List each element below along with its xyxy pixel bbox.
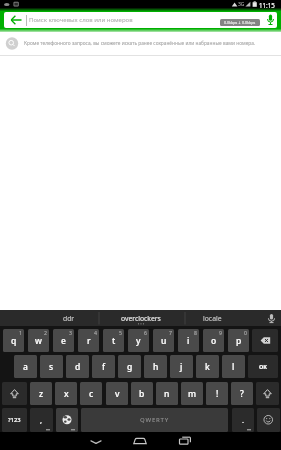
button[interactable]: k (196, 355, 219, 378)
staticText: . (242, 415, 245, 425)
button[interactable] (252, 329, 278, 352)
staticText: Кроме телефонного запроса, вы сможете ис… (24, 40, 256, 47)
button[interactable]: z (30, 382, 52, 405)
button[interactable]: u (153, 329, 174, 352)
button[interactable] (172, 432, 196, 450)
staticText: z (39, 388, 44, 400)
button[interactable]: r (78, 329, 99, 352)
button[interactable]: q (3, 329, 24, 352)
button[interactable]: h (144, 355, 167, 378)
staticText: 8 (194, 329, 197, 336)
staticText: k (205, 361, 210, 373)
staticText: l (232, 361, 235, 373)
staticText: d (75, 361, 81, 373)
staticText: g (127, 361, 133, 373)
staticText: 9 (219, 329, 222, 336)
staticText: ddr (63, 314, 75, 323)
staticText: OK (259, 363, 268, 370)
staticText: h (153, 361, 159, 373)
staticText: 11:15 (259, 1, 275, 9)
button[interactable] (84, 432, 108, 450)
staticText: o (211, 335, 217, 347)
button[interactable]: f (92, 355, 115, 378)
staticText: ? (240, 388, 244, 400)
staticText: Поиск ключевых слов или номеров (29, 16, 133, 24)
button[interactable]: o (203, 329, 224, 352)
button[interactable]: , (30, 408, 53, 432)
staticText: f (102, 361, 106, 373)
staticText: c (89, 388, 94, 400)
button[interactable]: m (181, 382, 203, 405)
button[interactable] (264, 12, 277, 28)
button[interactable]: j (170, 355, 193, 378)
button[interactable]: v (106, 382, 128, 405)
staticText: t (112, 335, 116, 347)
button[interactable] (256, 382, 279, 405)
button[interactable]: d (66, 355, 89, 378)
button[interactable]: ? (231, 382, 253, 405)
button[interactable] (128, 432, 152, 450)
button[interactable]: . (232, 408, 254, 432)
staticText: , (40, 415, 43, 425)
button[interactable]: Кроме телефонного запроса, вы сможете ис… (0, 31, 281, 55)
button[interactable]: locale (190, 310, 234, 326)
staticText: i (187, 335, 190, 347)
staticText: 5 (119, 329, 122, 336)
button[interactable]: p (228, 329, 249, 352)
staticText: 1 (19, 329, 22, 336)
staticText: ?123 (8, 416, 21, 424)
staticText: u (161, 335, 167, 347)
button[interactable] (2, 382, 27, 405)
staticText: 6 (144, 329, 147, 336)
button[interactable]: OK (248, 355, 278, 378)
button[interactable]: ddr (56, 310, 82, 326)
button[interactable]: n (156, 382, 178, 405)
staticText: n (164, 388, 170, 400)
button[interactable]: l (222, 355, 245, 378)
button[interactable]: w (28, 329, 49, 352)
button[interactable]: c (80, 382, 102, 405)
staticText: y (136, 335, 141, 347)
staticText: locale (203, 314, 222, 323)
button[interactable]: overclockers (110, 310, 172, 326)
button[interactable]: i (178, 329, 199, 352)
button[interactable]: b (131, 382, 153, 405)
staticText: 7 (169, 329, 172, 336)
staticText: 4 (94, 329, 97, 336)
staticText: 2 (44, 329, 47, 336)
staticText: v (115, 388, 120, 400)
button[interactable] (4, 12, 26, 28)
staticText: j (180, 361, 183, 373)
staticText: 0.0kbps ↓ 0.0kbps (224, 20, 256, 25)
button[interactable]: ?123 (2, 408, 27, 432)
staticText: s (49, 361, 54, 373)
staticText: q (11, 335, 17, 347)
staticText: ! (216, 388, 219, 400)
button[interactable]: ! (206, 382, 228, 405)
button[interactable] (56, 408, 78, 432)
staticText: 0 (244, 329, 247, 336)
staticText: x (64, 388, 69, 400)
staticText: e (61, 335, 66, 347)
staticText: 3G (238, 1, 245, 8)
button[interactable]: QWERTY (81, 408, 228, 432)
button[interactable]: a (14, 355, 37, 378)
staticText: p (236, 335, 242, 347)
staticText: r (87, 335, 91, 347)
staticText: 3 (69, 329, 72, 336)
staticText: b (139, 388, 145, 400)
button[interactable]: x (55, 382, 77, 405)
button[interactable]: g (118, 355, 141, 378)
button[interactable]: s (40, 355, 63, 378)
button[interactable]: t (103, 329, 124, 352)
button[interactable]: e (53, 329, 74, 352)
staticText: w (35, 335, 42, 347)
staticText: a (23, 361, 28, 373)
staticText: QWERTY (140, 416, 170, 424)
staticText: m (188, 388, 197, 400)
button[interactable] (257, 408, 280, 432)
staticText: overclockers (121, 314, 161, 323)
button[interactable]: y (128, 329, 149, 352)
